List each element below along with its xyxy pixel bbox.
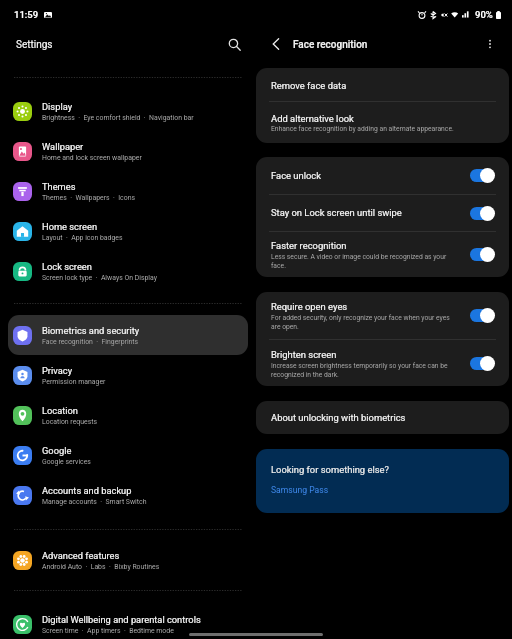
staticText: 90% [475, 9, 493, 20]
button[interactable]: Lock screen [8, 251, 248, 291]
staticText: Themes [42, 181, 76, 192]
button[interactable]: Advanced features [8, 540, 248, 580]
button[interactable]: Digital Wellbeing and parental controls [8, 604, 248, 639]
staticText: Remove face data [271, 80, 347, 91]
button[interactable]: Google [8, 435, 248, 475]
staticText: Require open eyes [271, 301, 348, 312]
button[interactable]: Search [221, 31, 247, 57]
button[interactable]: Location [8, 395, 248, 435]
staticText: Android Auto · Labs · Bixby Routines [42, 563, 160, 571]
staticText: Wallpaper [42, 141, 84, 152]
button[interactable]: Privacy [8, 355, 248, 395]
staticText: Home and lock screen wallpaper [42, 154, 142, 162]
staticText: Enhance face recognition by adding an al… [271, 125, 454, 133]
staticText: Lock screen [42, 261, 92, 272]
staticText: Accounts and backup [42, 485, 132, 496]
staticText: Face recognition · Fingerprints [42, 338, 139, 346]
staticText: Permission manager [42, 378, 106, 386]
staticText: Layout · App icon badges [42, 234, 123, 242]
staticText: Advanced features [42, 550, 120, 561]
staticText: Biometrics and security [42, 325, 140, 336]
button[interactable]: Themes [8, 171, 248, 211]
button[interactable]: Toggle [470, 168, 495, 183]
staticText: Privacy [42, 365, 73, 376]
staticText: Samsung Pass [271, 485, 329, 495]
button[interactable] [8, 315, 248, 355]
button[interactable]: Faster recognition [256, 232, 509, 277]
staticText: Screen lock type · Always On Display [42, 274, 157, 282]
staticText: Manage accounts · Smart Switch [42, 498, 147, 506]
staticText: Location [42, 405, 78, 416]
staticText: Faster recognition [271, 240, 347, 251]
staticText: Stay on Lock screen until swipe [271, 207, 402, 218]
staticText: Face unlock [271, 170, 322, 181]
staticText: Screen time · App timers · Bedtime mode [42, 627, 174, 635]
button[interactable]: Require open eyes [256, 292, 509, 339]
staticText: Location requests [42, 418, 98, 426]
staticText: Face recognition [293, 39, 368, 51]
staticText: Google services [42, 458, 91, 466]
staticText: Settings [16, 39, 53, 51]
staticText: Looking for something else? [271, 464, 389, 475]
button[interactable]: More options [477, 31, 503, 57]
button[interactable]: Looking for something else? [256, 449, 509, 513]
staticText: Add alternative look [271, 113, 354, 124]
button[interactable]: Biometrics and security [8, 315, 248, 355]
staticText: Less secure. A video or image could be r… [271, 253, 459, 270]
staticText: Themes · Wallpapers · Icons [42, 194, 135, 202]
button[interactable]: Stay on Lock screen until swipe [256, 195, 509, 231]
button[interactable]: Toggle [470, 356, 495, 371]
staticText: For added security, only recognize your … [271, 314, 459, 331]
button[interactable]: Toggle [470, 247, 495, 262]
staticText: Home screen [42, 221, 98, 232]
button[interactable]: Display [8, 91, 248, 131]
staticText: Display [42, 101, 73, 112]
staticText: Brightness · Eye comfort shield · Naviga… [42, 114, 194, 122]
staticText: Digital Wellbeing and parental controls [42, 614, 201, 625]
button[interactable]: Toggle [470, 308, 495, 323]
staticText: Increase screen brightness temporarily s… [271, 362, 459, 379]
staticText: About unlocking with biometrics [271, 412, 406, 423]
button[interactable]: Wallpaper [8, 131, 248, 171]
staticText: Brighten screen [271, 349, 337, 360]
button[interactable]: Accounts and backup [8, 475, 248, 515]
staticText: Google [42, 445, 72, 456]
button[interactable]: Remove face data [256, 68, 509, 101]
button[interactable]: Home screen [8, 211, 248, 251]
button[interactable]: Face unlock [256, 157, 509, 194]
button[interactable]: Back [263, 31, 289, 57]
button[interactable]: Add alternative look [256, 102, 509, 143]
button[interactable]: Brighten screen [256, 340, 509, 386]
button[interactable]: Toggle [470, 206, 495, 221]
staticText: 11:59 [14, 9, 39, 20]
